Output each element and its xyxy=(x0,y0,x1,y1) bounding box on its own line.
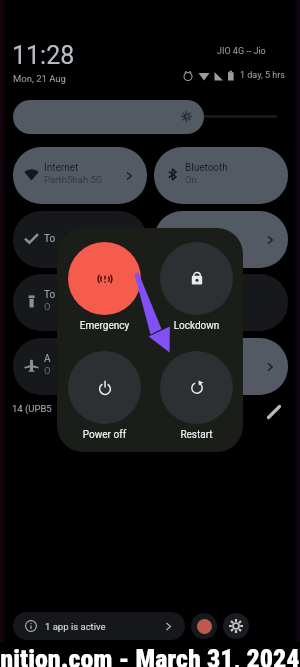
button[interactable]: Lockdown xyxy=(160,242,233,315)
button[interactable]: Restart xyxy=(160,351,233,424)
staticText: Internet xyxy=(44,162,79,174)
button[interactable]: Account xyxy=(191,613,217,639)
staticText: 1 day, 5 hrs xyxy=(240,70,285,81)
button[interactable]: Edit tiles xyxy=(264,402,284,422)
staticText: Lockdown xyxy=(160,320,233,332)
button[interactable]: Emergency xyxy=(68,242,141,315)
button[interactable]: 1 app is active xyxy=(13,612,185,640)
button[interactable]: Bluetooth xyxy=(154,147,288,204)
button[interactable]: To xyxy=(13,274,147,331)
staticText: Restart xyxy=(160,429,233,441)
staticText: Power off xyxy=(68,429,141,441)
button[interactable]: To xyxy=(13,211,147,268)
staticText: O xyxy=(44,365,51,376)
staticText: ParthShah 5G xyxy=(44,174,103,185)
staticText: To xyxy=(44,233,56,245)
staticText: 1 app is active xyxy=(45,621,106,632)
staticText: nition.com - March 31, 2024 xyxy=(0,644,300,667)
button[interactable] xyxy=(154,338,288,395)
button[interactable]: Internet xyxy=(13,147,147,204)
staticText: Bluetooth xyxy=(185,162,228,174)
staticText: 14 (UPB5 xyxy=(12,403,52,414)
button[interactable]: Brightness xyxy=(13,100,204,134)
button[interactable] xyxy=(154,211,288,268)
staticText: To xyxy=(44,289,56,301)
button[interactable]: rb xyxy=(154,274,288,331)
button[interactable]: Power off xyxy=(68,351,141,424)
staticText: On xyxy=(185,174,197,185)
button[interactable]: Settings xyxy=(223,613,249,639)
staticText: Emergency xyxy=(68,320,141,332)
staticText: A xyxy=(44,353,51,365)
staticText: Mon, 21 Aug xyxy=(13,73,66,84)
staticText: O xyxy=(44,301,51,312)
staticText: 11:28 xyxy=(12,41,75,70)
button[interactable]: A xyxy=(13,338,147,395)
staticText: JIO 4G -- Jio xyxy=(217,46,266,57)
